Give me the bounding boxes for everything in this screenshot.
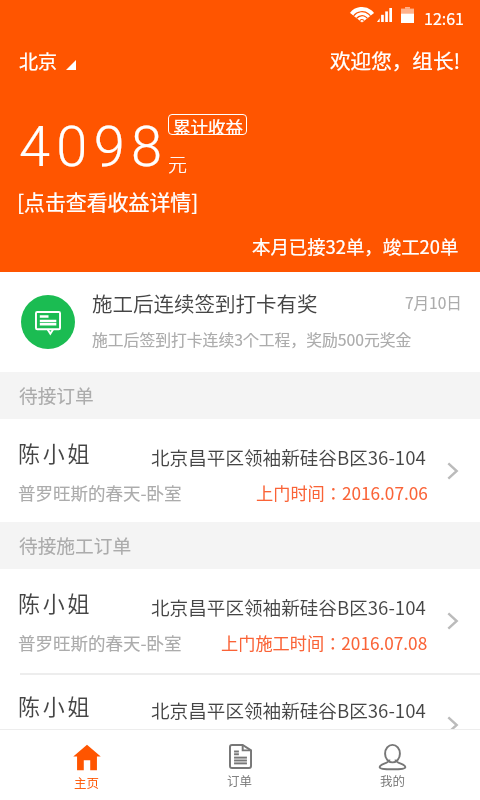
- staticText: 上门施工时间：2016.07.08: [221, 630, 428, 655]
- staticText: 普罗旺斯的春天-卧室: [18, 480, 182, 505]
- staticText: 12:61: [424, 6, 464, 29]
- staticText: 待接订单: [19, 381, 94, 408]
- button[interactable]: [点击查看收益详情]: [17, 186, 199, 216]
- staticText: 陈小姐: [18, 586, 93, 618]
- staticText: 订单: [227, 771, 253, 789]
- staticText: 北京: [19, 47, 58, 75]
- button[interactable]: 施工后连续签到打卡有奖: [0, 272, 480, 372]
- staticText: 元: [168, 150, 188, 178]
- staticText: 上门时间：2016.07.06: [256, 480, 428, 505]
- staticText: 北京昌平区领袖新硅谷B区36-104: [151, 443, 426, 470]
- button[interactable]: 陈小姐: [0, 419, 480, 522]
- staticText: 施工后签到打卡连续3个工程，奖励500元奖金: [92, 328, 412, 351]
- button[interactable]: 陈小姐: [0, 672, 480, 729]
- button[interactable]: Orders: [163, 730, 316, 799]
- button[interactable]: Profile: [316, 730, 469, 799]
- staticText: 待接施工订单: [19, 531, 132, 558]
- staticText: 普罗旺斯的春天-卧室: [18, 630, 182, 655]
- staticText: 欢迎您，组长!: [330, 45, 461, 75]
- button[interactable]: 北京: [19, 47, 76, 75]
- staticText: 我的: [380, 771, 406, 789]
- staticText: 4098: [19, 114, 169, 180]
- staticText: 北京昌平区领袖新硅谷B区36-104: [151, 696, 426, 723]
- staticText: 北京昌平区领袖新硅谷B区36-104: [151, 593, 426, 620]
- staticText: 主页: [74, 773, 100, 791]
- staticText: [点击查看收益详情]: [17, 186, 199, 216]
- staticText: 累计收益: [173, 114, 243, 135]
- button[interactable]: 陈小姐: [0, 569, 480, 672]
- staticText: 7月10日: [405, 291, 462, 313]
- staticText: 施工后连续签到打卡有奖: [92, 288, 318, 318]
- staticText: 陈小姐: [18, 689, 93, 721]
- staticText: 本月已接32单，竣工20单: [252, 233, 459, 260]
- staticText: 陈小姐: [18, 436, 93, 468]
- button[interactable]: Home: [11, 730, 163, 799]
